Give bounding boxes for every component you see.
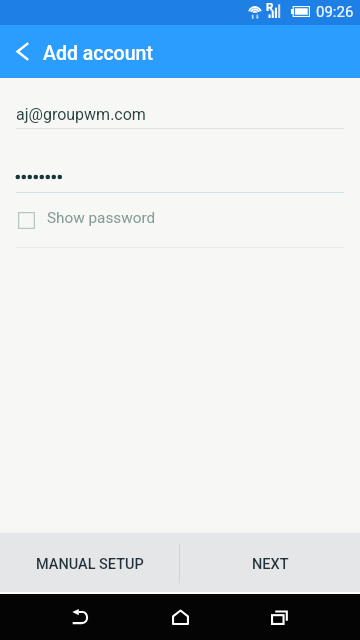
button[interactable]: Back [40,594,120,640]
button[interactable] [0,166,360,187]
button[interactable]: Home [140,594,220,640]
staticText: Show password [47,209,156,227]
button[interactable]: Back [0,25,44,78]
staticText: R [266,0,274,13]
button[interactable]: MANUAL SETUP [0,534,180,592]
button[interactable]: Recent apps [239,594,319,640]
staticText: MANUAL SETUP [36,556,144,573]
staticText: aj@groupwm.com [16,105,146,124]
staticText: 09:26 [316,3,354,21]
staticText: NEXT [252,556,289,573]
button[interactable]: NEXT [180,534,360,592]
staticText: Add account [43,42,153,65]
button[interactable]: aj@groupwm.com [0,100,360,128]
button[interactable]: Show password [0,196,360,240]
